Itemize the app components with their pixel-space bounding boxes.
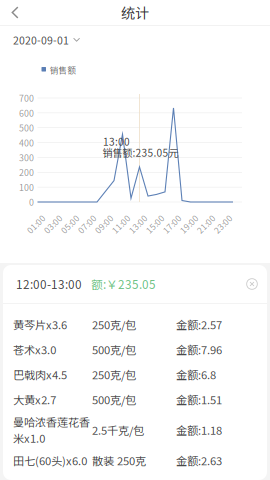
staticText: 07:00: [76, 218, 98, 230]
staticText: 200: [19, 166, 34, 179]
staticText: 2.5千克/包: [92, 422, 144, 438]
staticText: 13:00: [127, 218, 149, 230]
staticText: 600: [19, 106, 34, 119]
staticText: 巴戟肉x4.5: [13, 366, 67, 382]
staticText: 黄芩片x3.6: [13, 316, 67, 332]
staticText: 100: [19, 181, 34, 193]
staticText: 统计: [121, 2, 149, 23]
staticText: 金额:2.57: [176, 316, 222, 332]
staticText: 300: [19, 151, 34, 164]
staticText: 曼哈浓香莲花香米x1.0: [13, 414, 90, 446]
staticText: 销售额:235.05元: [102, 145, 178, 160]
staticText: 09:00: [93, 218, 115, 230]
staticText: 0: [29, 196, 34, 208]
staticText: 金额:7.96: [176, 341, 222, 357]
staticText: 15:00: [144, 218, 166, 230]
staticText: 250克/包: [92, 316, 136, 332]
staticText: 销售额: [49, 63, 76, 76]
staticText: 05:00: [59, 218, 81, 230]
staticText: 11:00: [110, 218, 132, 230]
staticText: 500克/包: [92, 391, 136, 407]
staticText: 500克/包: [92, 341, 136, 357]
staticText: 金额:1.51: [176, 391, 222, 407]
staticText: 19:00: [178, 218, 200, 230]
button[interactable]: 大黄x2.7: [3, 387, 267, 412]
staticText: 金额:6.8: [176, 366, 216, 382]
staticText: 21:00: [195, 218, 217, 230]
staticText: 2020-09-01: [13, 32, 69, 48]
button[interactable]: 2020-09-01: [0, 28, 270, 52]
staticText: 17:00: [161, 218, 183, 230]
button[interactable]: 苍术x3.0: [3, 337, 267, 362]
button[interactable]: 黄芩片x3.6: [3, 312, 267, 337]
staticText: 01:00: [25, 218, 47, 230]
button[interactable]: 巴戟肉x4.5: [3, 362, 267, 387]
staticText: 额:￥235.05: [91, 275, 156, 292]
staticText: 23:00: [212, 218, 234, 230]
staticText: 700: [19, 92, 34, 104]
staticText: 500: [19, 121, 34, 134]
staticText: 散装 250克: [92, 452, 146, 468]
staticText: 12:00-13:00: [16, 275, 82, 292]
staticText: 13:00: [103, 134, 130, 149]
staticText: 400: [19, 136, 34, 149]
staticText: 金额:1.18: [176, 422, 222, 438]
staticText: 03:00: [42, 218, 64, 230]
button[interactable]: Close: [246, 278, 258, 290]
staticText: 250克/包: [92, 366, 136, 382]
staticText: 大黄x2.7: [13, 391, 56, 407]
staticText: 苍术x3.0: [13, 341, 56, 357]
button[interactable]: Back: [0, 0, 30, 25]
button[interactable]: 田七(60头)x6.0: [3, 448, 267, 473]
button[interactable]: 曼哈浓香莲花香米x1.0: [3, 412, 267, 448]
staticText: 金额:2.63: [176, 452, 222, 468]
staticText: 田七(60头)x6.0: [13, 452, 87, 468]
